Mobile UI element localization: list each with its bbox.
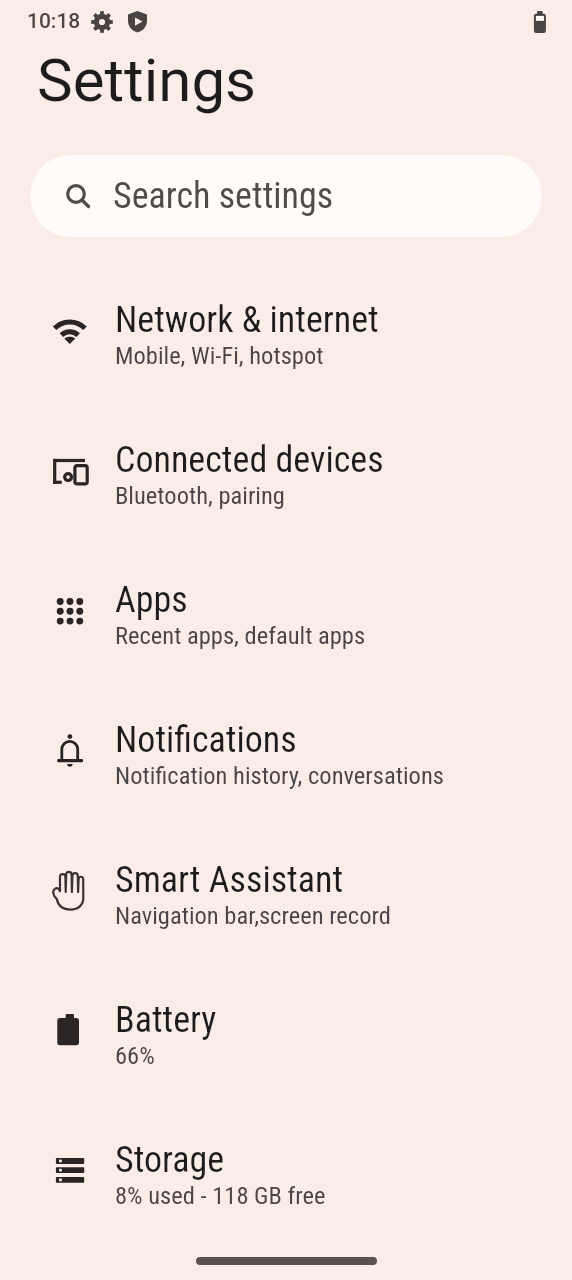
staticText: Apps bbox=[115, 579, 188, 621]
staticText: Navigation bar,screen record bbox=[115, 901, 391, 930]
staticText: Settings bbox=[37, 45, 257, 115]
button[interactable]: Network & internet bbox=[0, 264, 572, 404]
staticText: Notification history, conversations bbox=[115, 761, 444, 790]
button[interactable]: Storage bbox=[0, 1104, 572, 1244]
button[interactable]: Notifications bbox=[0, 684, 572, 824]
button[interactable]: Apps bbox=[0, 544, 572, 684]
staticText: Smart Assistant bbox=[115, 859, 344, 901]
staticText: Network & internet bbox=[115, 299, 379, 341]
staticText: Battery bbox=[115, 999, 217, 1041]
button[interactable]: Search settings bbox=[30, 155, 542, 237]
staticText: 8% used - 118 GB free bbox=[115, 1181, 326, 1210]
button[interactable]: Connected devices bbox=[0, 404, 572, 544]
staticText: Mobile, Wi-Fi, hotspot bbox=[115, 341, 324, 370]
staticText: Bluetooth, pairing bbox=[115, 481, 285, 510]
staticText: Recent apps, default apps bbox=[115, 621, 366, 650]
button[interactable]: Smart Assistant bbox=[0, 824, 572, 964]
staticText: 66% bbox=[115, 1041, 155, 1070]
staticText: Notifications bbox=[115, 719, 297, 761]
staticText: Search settings bbox=[113, 175, 334, 217]
staticText: 10:18 bbox=[27, 9, 81, 34]
button[interactable]: Battery bbox=[0, 964, 572, 1104]
staticText: Connected devices bbox=[115, 439, 384, 481]
staticText: Storage bbox=[115, 1139, 225, 1181]
